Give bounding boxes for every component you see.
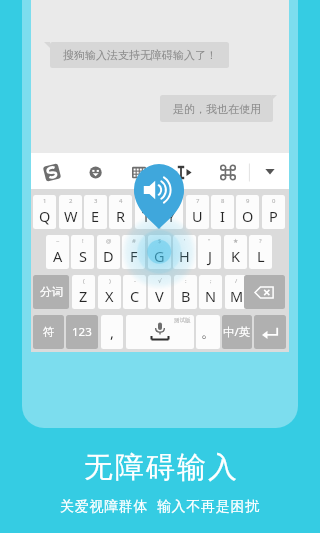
button[interactable]: 。	[196, 315, 220, 349]
staticText: #	[132, 237, 136, 245]
staticText: 测试版	[174, 317, 191, 324]
button[interactable]: '	[173, 235, 196, 269]
button[interactable]: $	[148, 235, 171, 269]
button[interactable]: )	[98, 275, 121, 309]
button[interactable]: "	[198, 235, 221, 269]
staticText: S	[79, 246, 87, 266]
button[interactable]: 中/英	[222, 315, 252, 349]
staticText: 8	[221, 197, 225, 205]
staticText: 123	[72, 324, 92, 340]
staticText: C	[130, 286, 140, 306]
staticText: 1	[43, 197, 47, 205]
button[interactable]: ;	[199, 275, 222, 309]
button[interactable]: (	[72, 275, 95, 309]
staticText: M	[230, 286, 244, 306]
staticText: F	[130, 246, 138, 266]
staticText: ~	[56, 237, 60, 245]
staticText: I	[220, 206, 225, 226]
staticText: 中/英	[223, 324, 251, 340]
button[interactable]: 8	[211, 195, 234, 229]
staticText: 。	[201, 323, 216, 341]
staticText: ,	[110, 322, 114, 342]
button[interactable]: Space	[126, 315, 194, 349]
staticText: -	[134, 277, 136, 285]
staticText: P	[269, 206, 278, 226]
staticText: W	[64, 206, 78, 226]
staticText: !	[82, 237, 84, 245]
staticText: D	[103, 246, 114, 266]
staticText: U	[192, 206, 203, 226]
staticText: Y	[167, 206, 176, 226]
staticText: Z	[79, 286, 88, 306]
button[interactable]: -	[123, 275, 146, 309]
staticText: 2	[69, 197, 73, 205]
staticText: 无障碍输入	[83, 449, 238, 486]
staticText: X	[105, 286, 114, 306]
staticText: 9	[246, 197, 250, 205]
staticText: Q	[39, 206, 51, 226]
staticText: R	[116, 206, 126, 226]
button[interactable]: 3	[84, 195, 107, 229]
button[interactable]: ~	[46, 235, 69, 269]
staticText: T	[142, 206, 151, 226]
button[interactable]: 分词	[33, 275, 69, 309]
button[interactable]: Backspace	[244, 275, 285, 309]
button[interactable]: @	[97, 235, 120, 269]
staticText: N	[205, 286, 217, 306]
staticText: V	[155, 286, 164, 306]
button[interactable]: 6	[160, 195, 183, 229]
button[interactable]: 123	[66, 315, 98, 349]
staticText: "	[208, 237, 211, 245]
staticText: 符	[43, 325, 55, 339]
button[interactable]: ?	[249, 235, 272, 269]
staticText: B	[181, 286, 191, 306]
staticText: '	[184, 237, 186, 245]
staticText: ;	[210, 277, 212, 285]
staticText: 搜狗输入法支持无障碍输入了！	[63, 48, 217, 62]
button[interactable]: Enter	[254, 315, 286, 349]
button[interactable]: 5	[135, 195, 158, 229]
button[interactable]: 7	[186, 195, 209, 229]
button[interactable]: √	[148, 275, 171, 309]
staticText: @	[106, 237, 112, 245]
button[interactable]: 0	[262, 195, 285, 229]
button[interactable]: 2	[59, 195, 82, 229]
staticText: 分词	[40, 285, 63, 299]
staticText: ?	[259, 237, 262, 245]
staticText: J	[208, 246, 212, 266]
button[interactable]: 1	[33, 195, 56, 229]
staticText: ★	[233, 237, 239, 244]
staticText: H	[179, 246, 190, 266]
button[interactable]: :	[174, 275, 197, 309]
staticText: :	[185, 277, 187, 285]
staticText: 4	[119, 197, 123, 205]
staticText: $	[158, 237, 162, 245]
staticText: K	[231, 246, 240, 266]
staticText: (	[83, 277, 85, 285]
button[interactable]: 4	[109, 195, 132, 229]
button[interactable]: ,	[101, 315, 123, 349]
staticText: /	[235, 277, 238, 285]
button[interactable]: /	[225, 275, 248, 309]
button[interactable]: 9	[236, 195, 259, 229]
staticText: 关爱视障群体 输入不再是困扰	[60, 496, 260, 515]
staticText: E	[91, 206, 100, 226]
staticText: 7	[196, 197, 200, 205]
staticText: G	[154, 246, 165, 266]
staticText: 是的，我也在使用	[173, 102, 261, 116]
staticText: A	[53, 246, 63, 266]
staticText: L	[257, 246, 265, 266]
button[interactable]: 符	[33, 315, 64, 349]
button[interactable]: #	[122, 235, 145, 269]
staticText: √	[158, 277, 162, 284]
button[interactable]: Voice input	[134, 164, 184, 229]
staticText: )	[109, 277, 111, 285]
button[interactable]: ★	[224, 235, 247, 269]
staticText: 0	[272, 197, 276, 205]
staticText: O	[242, 206, 254, 226]
staticText: 3	[94, 197, 98, 205]
button[interactable]: !	[71, 235, 94, 269]
